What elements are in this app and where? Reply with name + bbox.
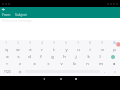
- staticText: w: [16, 47, 20, 53]
- staticText: k: [87, 54, 90, 60]
- button[interactable]: w: [12, 46, 24, 53]
- button[interactable]: l: [94, 53, 106, 60]
- button[interactable]: p: [108, 46, 120, 53]
- button[interactable]: 1: [0, 40, 12, 46]
- staticText: m: [99, 61, 103, 67]
- button[interactable]: q: [0, 46, 12, 53]
- staticText: q: [5, 47, 8, 53]
- button[interactable]: b: [68, 60, 81, 67]
- button[interactable]: 2: [12, 40, 24, 46]
- button[interactable]: c: [41, 60, 55, 67]
- button[interactable]: g: [46, 53, 58, 60]
- button[interactable]: Voice input: [109, 67, 120, 76]
- staticText: .: [104, 69, 106, 74]
- button[interactable]: r: [36, 46, 48, 53]
- staticText: r: [41, 47, 43, 53]
- staticText: y: [65, 47, 68, 53]
- staticText: p: [113, 47, 116, 53]
- staticText: 1: [5, 41, 7, 45]
- button[interactable]: Recent apps: [74, 77, 78, 81]
- button[interactable]: u: [72, 46, 84, 53]
- button[interactable]: e: [24, 46, 36, 53]
- button[interactable]: 6: [60, 40, 72, 46]
- staticText: 6: [65, 41, 67, 45]
- button[interactable]: Subject: [14, 12, 28, 17]
- button[interactable]: Emoji: [14, 67, 25, 76]
- staticText: d: [28, 54, 31, 60]
- staticText: From: [2, 12, 11, 17]
- button[interactable]: h: [58, 53, 70, 60]
- button[interactable]: 3: [24, 40, 36, 46]
- button[interactable]: i: [84, 46, 96, 53]
- staticText: n: [86, 61, 89, 67]
- button[interactable]: k: [82, 53, 94, 60]
- button[interactable]: Back: [42, 77, 46, 81]
- button[interactable]: m: [94, 60, 107, 67]
- staticText: l: [99, 54, 101, 60]
- staticText: h: [63, 54, 66, 60]
- button[interactable]: ?123: [0, 67, 14, 76]
- staticText: x: [33, 61, 36, 67]
- button[interactable]: Shift: [0, 60, 13, 67]
- staticText: j: [75, 54, 77, 60]
- button[interactable]: 8: [84, 40, 96, 46]
- button[interactable]: y: [60, 46, 72, 53]
- button[interactable]: n: [81, 60, 94, 67]
- staticText: u: [77, 47, 80, 53]
- staticText: i: [89, 47, 91, 53]
- button[interactable]: f: [35, 53, 46, 60]
- staticText: 2: [17, 41, 19, 45]
- button[interactable]: 7: [72, 40, 84, 46]
- staticText: 7: [77, 41, 79, 45]
- staticText: 8: [89, 41, 91, 45]
- staticText: t: [53, 47, 55, 53]
- button[interactable]: 9: [96, 40, 108, 46]
- button[interactable]: Backspace: [107, 60, 120, 67]
- staticText: a: [6, 54, 9, 60]
- staticText: 3: [29, 41, 31, 45]
- staticText: b: [73, 61, 76, 67]
- button[interactable]: Home: [59, 77, 63, 81]
- button[interactable]: s: [13, 53, 24, 60]
- button[interactable]: 5: [48, 40, 60, 46]
- staticText: ?123: [4, 70, 11, 74]
- button[interactable]: v: [55, 60, 68, 67]
- staticText: o: [101, 47, 104, 53]
- button[interactable]: a: [2, 53, 13, 60]
- button[interactable]: 0: [108, 40, 120, 46]
- button[interactable]: j: [70, 53, 82, 60]
- staticText: 4: [41, 41, 43, 45]
- staticText: f: [40, 54, 42, 60]
- button[interactable]: z: [13, 60, 27, 67]
- button[interactable]: x: [27, 60, 41, 67]
- staticText: c: [47, 61, 50, 67]
- staticText: z: [19, 61, 21, 67]
- button[interactable]: Enter: [106, 53, 120, 60]
- button[interactable]: 4: [36, 40, 48, 46]
- staticText: v: [60, 61, 63, 67]
- staticText: s: [17, 54, 20, 60]
- button[interactable]: Navigate up: [0, 7, 6, 12]
- staticText: e: [29, 47, 32, 53]
- staticText: 5: [53, 41, 55, 45]
- staticText: 0: [113, 41, 115, 45]
- staticText: Write your message: [2, 19, 32, 23]
- button[interactable]: o: [96, 46, 108, 53]
- button[interactable]: d: [24, 53, 35, 60]
- staticText: Subject: [15, 12, 27, 17]
- button[interactable]: t: [48, 46, 60, 53]
- staticText: 9: [101, 41, 103, 45]
- button[interactable]: From: [1, 12, 12, 17]
- staticText: g: [51, 54, 54, 60]
